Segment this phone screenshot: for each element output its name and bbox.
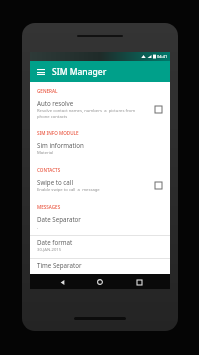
button[interactable]: Date format (30, 236, 170, 258)
staticText: Swipe to call (37, 178, 73, 186)
button[interactable]: Time Separator (30, 259, 170, 274)
staticText: Date Separator (37, 215, 81, 223)
staticText: MESSAGES (37, 204, 61, 210)
staticText: GENERAL (37, 88, 58, 94)
button[interactable]: Auto resolve checkbox (152, 103, 165, 116)
staticText: CONTACTS (37, 167, 61, 173)
staticText: Date format (37, 238, 73, 246)
staticText: 30-JAN-2015 (37, 247, 62, 253)
button[interactable]: Open navigation menu (34, 65, 48, 79)
button[interactable]: Recent apps (132, 275, 146, 289)
button[interactable]: Sim information (30, 139, 170, 161)
staticText: SIM Manager (52, 66, 107, 78)
staticText: Time Separator (37, 261, 82, 269)
button[interactable]: Back (55, 275, 69, 289)
button[interactable]: Swipe to call (30, 176, 170, 198)
staticText: Sim information (37, 141, 84, 149)
staticText: Resolve contact names, numbers a picture… (37, 108, 136, 119)
button[interactable]: Date Separator (30, 213, 170, 235)
staticText: SIM INFO MODULE (37, 130, 79, 136)
staticText: , (37, 224, 39, 230)
staticText: Material (37, 150, 54, 156)
staticText: 04:41 (157, 54, 168, 59)
button[interactable]: Auto resolve (30, 97, 170, 124)
staticText: Auto resolve (37, 99, 74, 107)
button[interactable]: Home (93, 275, 107, 289)
staticText: Enable swipe to call a message (37, 187, 100, 193)
button[interactable]: Swipe to call checkbox (152, 179, 165, 192)
